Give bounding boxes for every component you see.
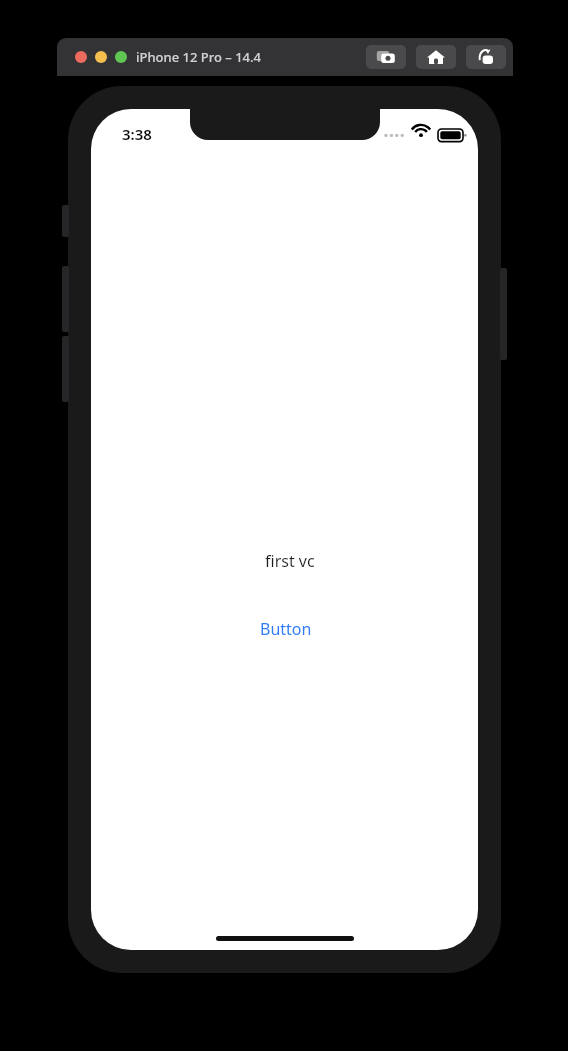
- staticText: 3:38: [122, 124, 152, 144]
- button[interactable]: Home: [416, 45, 456, 69]
- button[interactable]: Share: [466, 45, 506, 69]
- button[interactable]: Screenshot: [366, 45, 406, 69]
- button[interactable]: Button: [260, 618, 312, 640]
- button[interactable]: Zoom: [115, 51, 127, 63]
- staticText: iPhone 12 Pro – 14.4: [136, 48, 261, 66]
- button[interactable]: Close: [75, 51, 87, 63]
- staticText: first vc: [265, 550, 315, 572]
- staticText: Button: [260, 618, 312, 640]
- button[interactable]: Minimize: [95, 51, 107, 63]
